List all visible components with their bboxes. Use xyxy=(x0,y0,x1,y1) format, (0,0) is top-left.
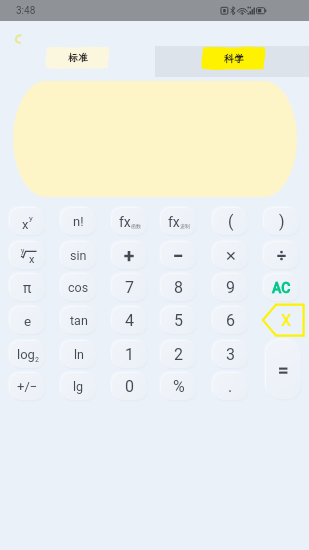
staticText: ) xyxy=(279,212,285,231)
button[interactable]: sin xyxy=(61,242,96,269)
staticText: . xyxy=(228,377,233,396)
button[interactable]: 3 xyxy=(213,341,248,368)
staticText: y xyxy=(21,247,25,255)
button[interactable]: 0 xyxy=(112,373,147,400)
staticText: 0 xyxy=(125,377,134,396)
button[interactable]: log xyxy=(10,341,45,368)
button[interactable]: e xyxy=(10,307,45,334)
button[interactable]: 科学 xyxy=(201,46,266,70)
staticText: 标准 xyxy=(68,51,88,64)
button[interactable]: 8 xyxy=(161,274,196,301)
button[interactable]: +/− xyxy=(10,373,45,400)
staticText: 7 xyxy=(125,278,134,297)
staticText: x xyxy=(22,217,29,232)
staticText: X xyxy=(281,311,292,330)
staticText: cos xyxy=(68,280,89,295)
button[interactable]: ln xyxy=(61,341,96,368)
button[interactable]: 7 xyxy=(112,274,147,301)
button[interactable]: y xyxy=(10,242,45,269)
button[interactable]: π xyxy=(10,274,45,301)
button[interactable]: fx xyxy=(112,208,147,235)
staticText: = xyxy=(278,359,289,381)
staticText: 5 xyxy=(174,311,183,330)
staticText: 1 xyxy=(125,345,134,364)
button[interactable]: fx xyxy=(161,208,196,235)
button[interactable]: ) xyxy=(264,208,299,235)
staticText: AC xyxy=(272,280,291,296)
staticText: ln xyxy=(74,347,84,362)
staticText: ✕ xyxy=(225,248,237,264)
staticText: 8 xyxy=(174,278,183,297)
staticText: ( xyxy=(228,212,234,231)
button[interactable]: 5 xyxy=(161,307,196,334)
button[interactable]: 9 xyxy=(213,274,248,301)
staticText: x xyxy=(29,253,35,266)
button[interactable]: 4 xyxy=(112,307,147,334)
staticText: fx xyxy=(119,214,131,230)
button[interactable]: Backspace xyxy=(261,302,306,338)
button[interactable]: tan xyxy=(61,307,96,334)
staticText: e xyxy=(24,313,32,329)
staticText: 科学 xyxy=(224,52,244,65)
staticText: n! xyxy=(73,214,84,229)
staticText: 9 xyxy=(226,278,235,297)
staticText: sin xyxy=(70,248,87,263)
button[interactable]: − xyxy=(161,242,196,269)
button[interactable]: 1 xyxy=(112,341,147,368)
staticText: 3:48 xyxy=(16,5,36,17)
button[interactable]: % xyxy=(161,373,196,400)
staticText: 进制 xyxy=(180,223,190,229)
button[interactable]: AC xyxy=(264,274,299,301)
button[interactable]: lg xyxy=(61,373,96,400)
staticText: log xyxy=(17,347,35,362)
staticText: 函数 xyxy=(131,223,141,229)
button[interactable]: + xyxy=(112,242,147,269)
button[interactable]: ( xyxy=(213,208,248,235)
staticText: ÷ xyxy=(277,246,287,265)
staticText: 4 xyxy=(125,311,134,330)
button[interactable]: n! xyxy=(61,208,96,235)
staticText: tan xyxy=(70,313,88,328)
button[interactable]: = xyxy=(266,340,301,399)
staticText: 6 xyxy=(226,311,235,330)
staticText: 2 xyxy=(174,345,183,364)
staticText: + xyxy=(124,245,135,266)
staticText: 2 xyxy=(35,356,39,364)
staticText: y xyxy=(29,214,33,223)
button[interactable]: ✕ xyxy=(213,242,248,269)
button[interactable]: x xyxy=(10,208,45,235)
staticText: − xyxy=(173,245,184,266)
staticText: % xyxy=(173,377,185,396)
button[interactable]: 标准 xyxy=(45,46,110,69)
staticText: +/− xyxy=(17,379,38,394)
button[interactable]: ÷ xyxy=(264,242,299,269)
staticText: fx xyxy=(168,214,180,230)
button[interactable]: . xyxy=(213,373,248,400)
button[interactable]: cos xyxy=(61,274,96,301)
button[interactable]: 6 xyxy=(213,307,248,334)
staticText: lg xyxy=(73,379,84,394)
staticText: π xyxy=(23,280,32,296)
button[interactable]: 2 xyxy=(161,341,196,368)
staticText: 3 xyxy=(226,345,235,364)
